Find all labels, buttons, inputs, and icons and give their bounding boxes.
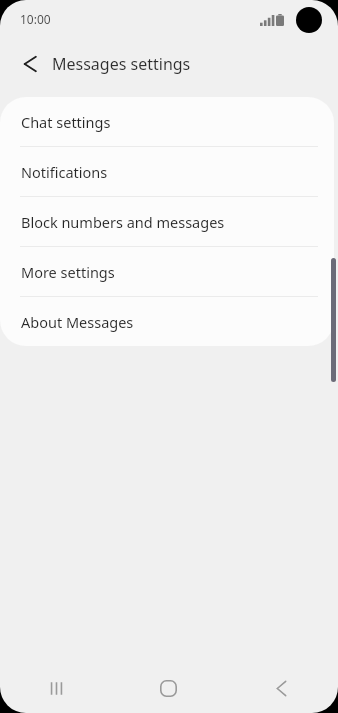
button[interactable]: More settings	[0, 247, 334, 296]
staticText: Chat settings	[21, 112, 111, 132]
button[interactable]: Notifications	[0, 147, 334, 196]
button[interactable]: Back	[12, 46, 48, 82]
button[interactable]: About Messages	[0, 297, 334, 346]
staticText: Messages settings	[52, 53, 191, 75]
button[interactable]: Recents	[0, 663, 112, 713]
staticText: Block numbers and messages	[21, 212, 225, 232]
button[interactable]: Home	[112, 663, 225, 713]
staticText: About Messages	[21, 312, 134, 332]
button[interactable]: Block numbers and messages	[0, 197, 334, 246]
button[interactable]: Chat settings	[0, 97, 334, 146]
staticText: Notifications	[21, 162, 108, 182]
button[interactable]: Back	[225, 663, 338, 713]
staticText: 10:00	[20, 11, 51, 27]
staticText: More settings	[21, 262, 115, 282]
